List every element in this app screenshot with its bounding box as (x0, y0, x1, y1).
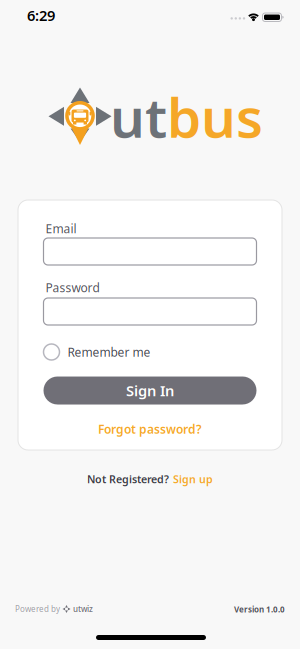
staticText: 6:29 (27, 5, 55, 25)
button[interactable]: Sign up (173, 472, 213, 486)
button[interactable]: Remember me (43, 344, 256, 360)
staticText: Version 1.0.0 (234, 604, 285, 615)
staticText: Powered by (15, 604, 60, 614)
staticText: Remember me (67, 344, 150, 360)
staticText: utwiz (73, 604, 93, 614)
staticText: ut (110, 80, 167, 153)
staticText: Email (45, 220, 76, 236)
staticText: Sign In (126, 381, 174, 400)
button[interactable]: Sign In (43, 376, 256, 404)
button[interactable]: Forgot password? (98, 421, 202, 437)
staticText: Forgot password? (98, 421, 202, 437)
staticText: Sign up (173, 472, 213, 486)
button[interactable]: Password (43, 298, 256, 325)
staticText: bus (167, 80, 263, 153)
staticText: Not Registered? (87, 472, 169, 486)
button[interactable]: Email (43, 238, 256, 265)
staticText: Password (45, 279, 99, 295)
